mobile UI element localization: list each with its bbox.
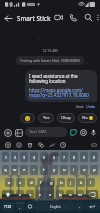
button[interactable]: p — [90, 165, 98, 175]
button[interactable]: Text SMS — [25, 127, 67, 137]
button[interactable]: Gallery — [13, 127, 24, 138]
button[interactable]: m — [76, 190, 84, 199]
button[interactable]: Delete — [24, 139, 35, 150]
staticText: Sent — [76, 104, 84, 109]
button[interactable]: I need assistance at the following locat… — [25, 70, 97, 102]
staticText: 3 — [23, 155, 25, 160]
button[interactable]: h — [57, 178, 65, 187]
button[interactable]: Handwriting — [46, 139, 57, 150]
button[interactable]: u — [60, 165, 68, 175]
staticText: h — [60, 180, 63, 186]
button[interactable]: Space — [36, 202, 74, 211]
button[interactable]: c — [36, 190, 44, 199]
button[interactable]: Clipboard — [2, 139, 13, 150]
button[interactable]: z — [16, 190, 24, 199]
button[interactable]: Emoji kitchen — [35, 139, 46, 150]
button[interactable]: i — [70, 165, 78, 175]
staticText: e — [23, 167, 26, 173]
staticText: 4 — [33, 155, 35, 160]
staticText: English — [50, 205, 61, 209]
staticText: w — [13, 167, 17, 173]
button[interactable]: Camera — [78, 127, 88, 137]
button[interactable]: Undo — [86, 104, 96, 109]
button[interactable]: Collapse keyboard — [88, 139, 99, 150]
button[interactable]: More options — [96, 11, 100, 24]
button[interactable]: j — [67, 178, 75, 187]
button[interactable]: Smart Stick — [17, 14, 51, 22]
button[interactable]: Theme — [57, 139, 68, 150]
button[interactable]: q — [2, 165, 9, 175]
button[interactable]: s — [16, 178, 25, 187]
button[interactable]: 2 — [11, 152, 18, 162]
staticText: ?123 — [4, 204, 12, 209]
button[interactable]: Call — [66, 10, 81, 25]
staticText: u — [63, 167, 66, 173]
staticText: Texting with Smart Stick (SMS/MMS) — [20, 58, 80, 63]
button[interactable]: e — [20, 165, 28, 175]
button[interactable]: , — [16, 202, 24, 211]
button[interactable]: Emoji — [26, 202, 34, 211]
button[interactable]: d — [27, 178, 35, 187]
staticText: x — [29, 192, 32, 198]
button[interactable]: v — [46, 190, 54, 199]
button[interactable]: Add — [2, 127, 13, 138]
button[interactable]: No — [78, 113, 97, 123]
button[interactable]: n — [66, 190, 74, 199]
button[interactable]: 5 — [40, 152, 48, 162]
staticText: r — [33, 167, 35, 173]
button[interactable]: Search — [81, 10, 96, 25]
button[interactable]: t — [40, 165, 48, 175]
button[interactable]: g — [47, 178, 55, 187]
button[interactable]: Backspace — [86, 190, 98, 199]
button[interactable]: x — [26, 190, 34, 199]
button[interactable]: 0 — [90, 152, 98, 162]
button[interactable]: f — [37, 178, 45, 187]
staticText: Yes — [43, 115, 50, 121]
staticText: 6 — [53, 155, 55, 160]
button[interactable]: k — [77, 178, 85, 187]
staticText: I need assistance at the following locat… — [29, 73, 93, 85]
staticText: f — [40, 180, 42, 186]
button[interactable]: 7 — [60, 152, 68, 162]
button[interactable]: Translate — [13, 139, 24, 150]
staticText: s — [19, 180, 22, 186]
staticText: , — [19, 204, 21, 210]
button[interactable]: Voice message — [88, 127, 98, 137]
button[interactable]: Emoji reply — [20, 113, 35, 123]
button[interactable]: r — [30, 165, 38, 175]
button[interactable]: Back — [0, 10, 16, 26]
staticText: https://maps.google.com/maps?q=23.432791… — [29, 87, 93, 99]
button[interactable]: w — [11, 165, 18, 175]
button[interactable]: Enter — [86, 202, 98, 211]
staticText: Undo — [86, 104, 96, 109]
button[interactable]: Okay — [57, 113, 75, 123]
staticText: 1 — [5, 155, 7, 160]
staticText: v — [49, 192, 52, 198]
button[interactable]: y — [50, 165, 58, 175]
staticText: d — [30, 180, 33, 186]
staticText: 9 — [83, 155, 85, 160]
button[interactable]: 8 — [70, 152, 78, 162]
staticText: 5 — [43, 155, 45, 160]
button[interactable]: 4 — [30, 152, 38, 162]
staticText: c — [39, 192, 42, 198]
button[interactable]: Video call — [51, 10, 66, 25]
button[interactable]: l — [87, 178, 95, 187]
staticText: b — [59, 192, 62, 198]
staticText: y — [53, 167, 56, 173]
button[interactable]: ?123 — [2, 202, 14, 211]
button[interactable]: Yes — [38, 113, 54, 123]
staticText: q — [4, 167, 7, 173]
button[interactable]: 6 — [50, 152, 58, 162]
button[interactable]: 3 — [20, 152, 28, 162]
button[interactable]: 1 — [2, 152, 9, 162]
button[interactable]: a — [5, 178, 14, 187]
button[interactable]: 9 — [80, 152, 88, 162]
button[interactable]: b — [56, 190, 64, 199]
staticText: z — [19, 192, 21, 198]
button[interactable]: . — [76, 202, 84, 211]
button[interactable]: Stickers — [68, 127, 78, 137]
staticText: j — [70, 180, 72, 186]
button[interactable]: o — [80, 165, 88, 175]
button[interactable]: Shift — [2, 190, 14, 199]
